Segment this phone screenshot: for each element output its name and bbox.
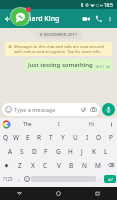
button[interactable]: Voice message [102, 103, 115, 116]
staticText: E [26, 133, 30, 142]
button[interactable]: Q [0, 130, 11, 144]
staticText: Just testing something [28, 61, 93, 69]
button[interactable]: Emoji keyboard [22, 172, 31, 186]
button[interactable]: M [91, 158, 104, 172]
button[interactable]: Back [2, 13, 13, 24]
staticText: F [44, 147, 48, 156]
staticText: M [95, 161, 101, 170]
other: Attach [80, 106, 87, 113]
staticText: 18:51 [95, 64, 105, 69]
button[interactable]: V [52, 158, 65, 172]
button[interactable]: Back [0, 187, 39, 200]
button[interactable]: U [69, 130, 81, 144]
button[interactable]: Recents [78, 187, 117, 200]
button[interactable]: S [16, 144, 28, 158]
button[interactable]: I [81, 130, 93, 144]
button[interactable]: Period [96, 172, 104, 186]
staticText: U [73, 133, 78, 142]
staticText: The [23, 121, 32, 128]
button[interactable]: X [26, 158, 39, 172]
button[interactable]: The [11, 118, 43, 130]
button[interactable]: Backspace [104, 158, 117, 172]
staticText: hard King [27, 14, 60, 24]
staticText: Q [3, 133, 9, 142]
button[interactable]: D [28, 144, 40, 158]
staticText: Hi [89, 121, 94, 128]
button[interactable]: Shift [0, 158, 13, 172]
staticText: X [31, 161, 35, 170]
staticText: R [37, 133, 42, 142]
staticText: O [96, 133, 102, 142]
staticText: 18:5 [104, 2, 113, 8]
staticText: P [109, 133, 113, 142]
staticText: K [92, 147, 97, 156]
button[interactable]: O [93, 130, 105, 144]
staticText: C [43, 161, 48, 170]
staticText: Type a message [14, 106, 56, 113]
button[interactable]: ?123 [1, 172, 15, 186]
staticText: L [104, 147, 108, 156]
staticText: S [20, 147, 24, 156]
staticText: I [86, 133, 89, 142]
button[interactable]: K [88, 144, 100, 158]
button[interactable]: Z [13, 158, 26, 172]
button[interactable]: W [11, 130, 22, 144]
button[interactable]: Call [92, 12, 105, 25]
button[interactable]: B [65, 158, 78, 172]
button[interactable]: Just testing something [25, 59, 113, 71]
button[interactable]: Hi [75, 118, 107, 130]
button[interactable]: Home [39, 187, 78, 200]
button[interactable]: L [100, 144, 112, 158]
staticText: W [13, 133, 20, 142]
button[interactable]: I [43, 118, 75, 130]
staticText: G [56, 147, 61, 156]
button[interactable]: F [40, 144, 52, 158]
button[interactable]: Video call [79, 12, 92, 25]
staticText: ?123 [3, 176, 13, 182]
staticText: D [32, 147, 37, 156]
staticText: J [81, 147, 83, 156]
button[interactable]: More suggestions [107, 118, 115, 130]
button[interactable]: Enter [104, 175, 116, 183]
button[interactable]: P [105, 130, 117, 144]
button[interactable]: More options [105, 14, 115, 24]
staticText: Z [18, 161, 22, 170]
staticText: Y [61, 133, 65, 142]
button[interactable]: hard King [27, 9, 79, 28]
staticText: . [99, 175, 101, 183]
button[interactable]: H [64, 144, 76, 158]
button[interactable]: R [33, 130, 45, 144]
staticText: T [49, 133, 53, 142]
button[interactable]: Google [2, 120, 11, 129]
staticText: N [82, 161, 87, 170]
other: Camera [90, 106, 97, 113]
button[interactable]: Emoji [2, 103, 100, 116]
staticText: B [69, 161, 74, 170]
button[interactable]: N [78, 158, 91, 172]
staticText: I [58, 121, 60, 128]
staticText: , [18, 175, 20, 183]
button[interactable]: E [22, 130, 33, 144]
button[interactable]: G [52, 144, 64, 158]
staticText: V [57, 161, 61, 170]
button[interactable]: A [5, 144, 16, 158]
staticText: A [8, 147, 13, 156]
button[interactable]: Messages to this chat and calls are now … [5, 42, 112, 56]
button[interactable]: T [45, 130, 57, 144]
button[interactable]: J [76, 144, 88, 158]
staticText: H [68, 147, 73, 156]
button[interactable]: C [39, 158, 52, 172]
button[interactable]: Comma [15, 172, 22, 186]
button[interactable]: Y [57, 130, 69, 144]
staticText: 8 NOVEMBER 2017 [40, 32, 78, 38]
other: Emoji [5, 106, 12, 113]
staticText: Messages to this chat and calls are now … [14, 44, 109, 54]
